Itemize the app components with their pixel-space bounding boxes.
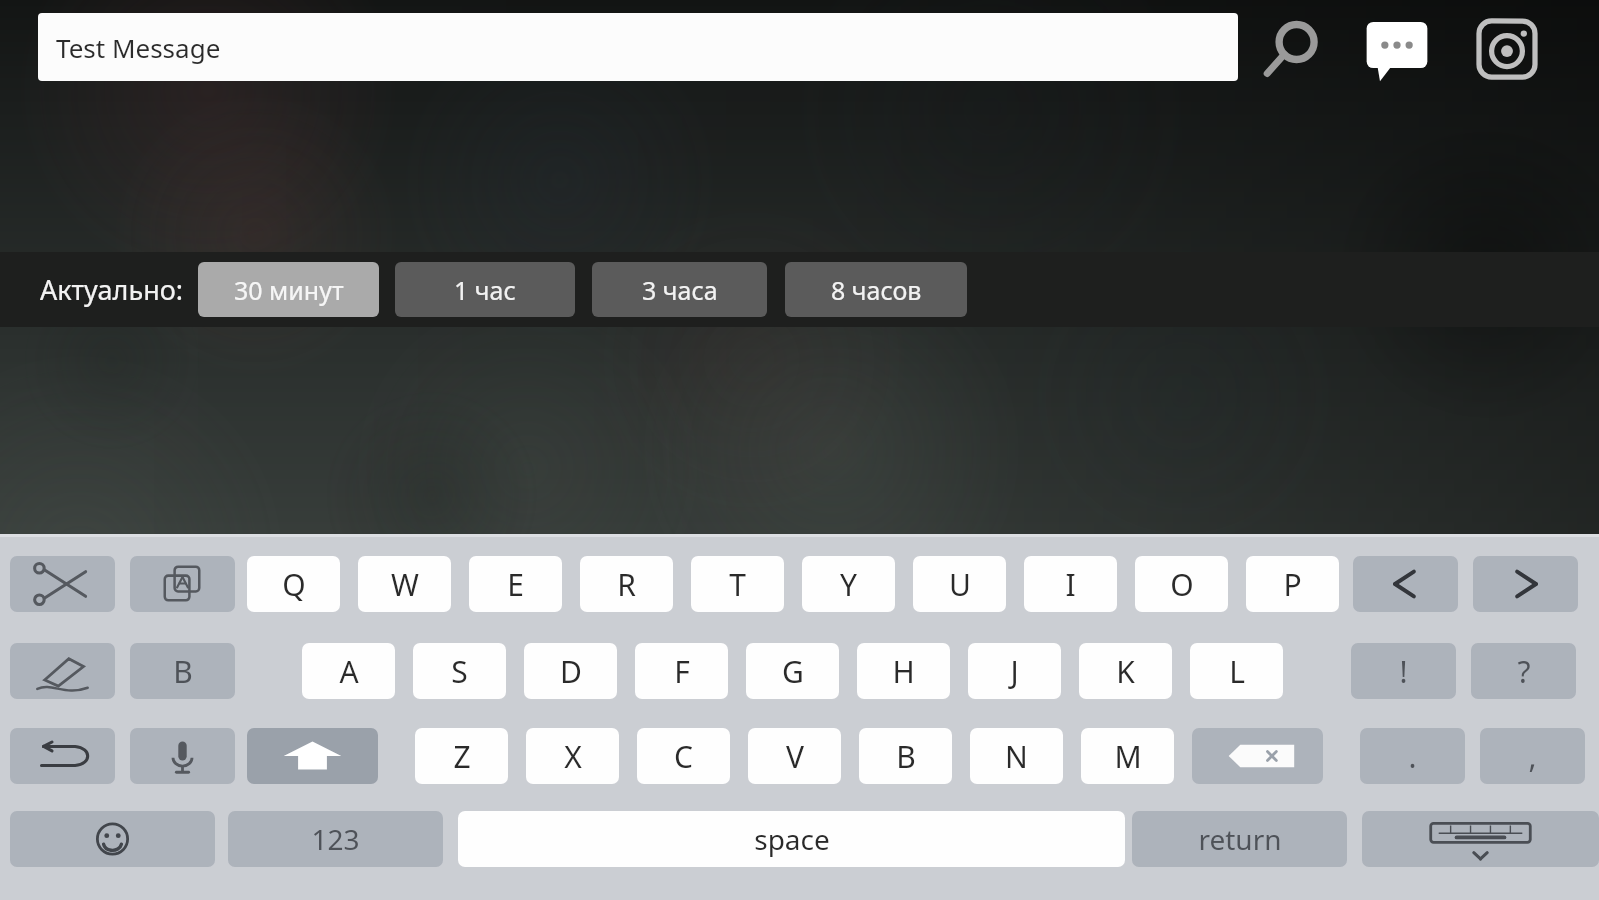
button[interactable]: U [913,556,1006,612]
button[interactable]: 30 минут [198,262,379,317]
staticText: C [674,736,693,777]
staticText: G [782,651,804,692]
button[interactable]: O [1135,556,1228,612]
staticText: Актуально: [40,271,184,308]
staticText: , [1528,736,1537,777]
staticText: D [560,651,582,692]
button[interactable]: N [970,728,1063,784]
button[interactable]: B [859,728,952,784]
button[interactable]: Cut [10,556,115,612]
staticText: space [754,820,830,858]
staticText: 3 часа [642,273,718,307]
button[interactable]: Q [247,556,340,612]
button[interactable]: F [635,643,728,699]
staticText: F [674,651,690,692]
button[interactable]: Z [415,728,508,784]
button[interactable]: V [748,728,841,784]
button[interactable]: G [746,643,839,699]
staticText: J [1010,651,1019,692]
staticText: B [173,651,193,692]
staticText: A [339,651,359,692]
staticText: ? [1517,651,1531,692]
button[interactable]: C [637,728,730,784]
staticText: Q [282,564,306,605]
staticText: 1 час [454,273,516,307]
button[interactable]: Camera [1472,14,1542,84]
button[interactable]: E [469,556,562,612]
staticText: Y [840,564,857,605]
button[interactable]: Next [1473,556,1578,612]
button[interactable]: P [1246,556,1339,612]
button[interactable]: X [526,728,619,784]
button[interactable]: Backspace [1192,728,1323,784]
button[interactable]: , [1480,728,1585,784]
button[interactable]: T [691,556,784,612]
staticText: W [391,564,419,605]
staticText: ! [1399,651,1408,692]
button[interactable]: ! [1351,643,1456,699]
staticText: O [1170,564,1194,605]
staticText: X [564,736,582,777]
button[interactable]: I [1024,556,1117,612]
button[interactable]: Previous [1353,556,1458,612]
staticText: E [507,564,524,605]
button[interactable]: Undo [10,728,115,784]
button[interactable]: M [1081,728,1174,784]
button[interactable]: Hide keyboard [1362,811,1599,867]
button[interactable]: Highlight [10,643,115,699]
staticText: S [451,651,468,692]
button[interactable]: . [1360,728,1465,784]
button[interactable]: H [857,643,950,699]
staticText: N [1005,736,1028,777]
staticText: H [892,651,915,692]
staticText: V [786,736,804,777]
button[interactable]: Dictation [130,728,235,784]
staticText: M [1114,736,1142,777]
staticText: R [617,564,636,605]
button[interactable]: Search [1256,14,1326,84]
button[interactable]: S [413,643,506,699]
staticText: L [1229,651,1245,692]
button[interactable]: L [1190,643,1283,699]
button[interactable]: 3 часа [592,262,767,317]
button[interactable]: 8 часов [785,262,967,317]
button[interactable]: 123 [228,811,443,867]
button[interactable]: D [524,643,617,699]
staticText: B [896,736,916,777]
staticText: I [1065,564,1076,605]
staticText: 30 минут [234,273,344,307]
button[interactable]: Emoji [10,811,215,867]
staticText: . [1408,736,1417,777]
button[interactable]: Copy [130,556,235,612]
button[interactable]: R [580,556,673,612]
staticText: 8 часов [831,273,922,307]
button[interactable]: Test Message [38,13,1238,81]
button[interactable]: return [1132,811,1347,867]
button[interactable]: Shift [247,728,378,784]
staticText: 123 [311,820,360,858]
staticText: Test Message [56,30,221,65]
staticText: Z [453,736,471,777]
staticText: P [1283,564,1302,605]
staticText: T [729,564,746,605]
button[interactable]: A [302,643,395,699]
button[interactable]: ? [1471,643,1576,699]
button[interactable]: B [130,643,235,699]
button[interactable]: space [458,811,1125,867]
staticText: return [1198,820,1282,858]
button[interactable]: K [1079,643,1172,699]
button[interactable]: W [358,556,451,612]
button[interactable]: Y [802,556,895,612]
staticText: K [1116,651,1135,692]
staticText: U [949,564,971,605]
button[interactable]: J [968,643,1061,699]
button[interactable]: Messages [1364,14,1430,80]
button[interactable]: 1 час [395,262,575,317]
